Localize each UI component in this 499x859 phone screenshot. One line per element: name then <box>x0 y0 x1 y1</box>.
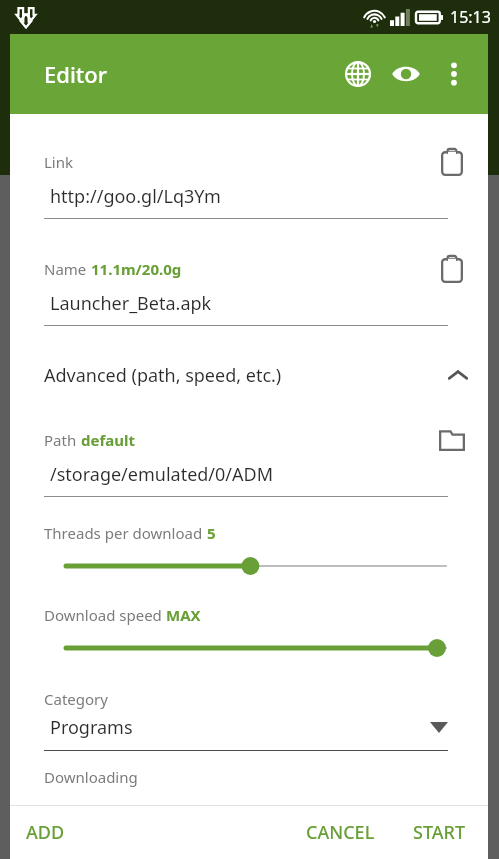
button[interactable]: Paste link <box>430 140 474 184</box>
staticText: /storage/emulated/0/ADM <box>50 462 274 487</box>
staticText: Name <box>44 259 91 279</box>
staticText: START <box>413 820 466 845</box>
staticText: Link <box>44 152 74 172</box>
staticText: CANCEL <box>306 820 375 845</box>
button[interactable]: ADD <box>10 812 81 853</box>
button[interactable]: Launcher_Beta.apk <box>44 291 448 326</box>
staticText: Programs <box>50 715 430 740</box>
button[interactable]: http://goo.gl/Lq3Ym <box>44 184 448 219</box>
staticText: Path <box>44 430 81 450</box>
staticText: default <box>81 430 135 450</box>
button[interactable]: Paste name <box>430 247 474 291</box>
button[interactable]: START <box>399 812 480 853</box>
staticText: MAX <box>166 605 201 625</box>
staticText: 11.1m/20.0g <box>91 259 182 279</box>
button[interactable] <box>66 551 446 581</box>
staticText: Editor <box>44 59 108 89</box>
button[interactable]: More options <box>430 50 478 98</box>
button[interactable]: /storage/emulated/0/ADM <box>44 462 448 497</box>
button[interactable]: Preview <box>382 50 430 98</box>
button[interactable]: CANCEL <box>292 812 389 853</box>
staticText: 5 <box>207 523 216 543</box>
staticText: ADD <box>26 820 65 845</box>
button[interactable] <box>66 633 446 663</box>
staticText: Launcher_Beta.apk <box>50 291 212 316</box>
button[interactable]: Programs <box>44 715 448 751</box>
button[interactable]: Browser <box>334 50 382 98</box>
button[interactable]: Advanced (path, speed, etc.) <box>10 354 488 396</box>
button[interactable]: Choose folder <box>430 418 474 462</box>
staticText: Downloading <box>44 767 138 787</box>
staticText: Advanced (path, speed, etc.) <box>44 363 436 388</box>
staticText: 15:13 <box>450 6 491 28</box>
staticText: Category <box>44 689 108 709</box>
staticText: Threads per download <box>44 523 207 543</box>
staticText: http://goo.gl/Lq3Ym <box>50 184 221 209</box>
staticText: Download speed <box>44 605 166 625</box>
